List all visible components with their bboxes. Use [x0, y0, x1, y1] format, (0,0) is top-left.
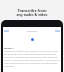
- button[interactable]: Done: [55, 30, 60, 32]
- staticText: Speaker 1: [4, 47, 14, 50]
- button[interactable]: Back: [4, 30, 9, 32]
- staticText: any audio & video: [16, 12, 48, 17]
- button[interactable]: Play: [31, 38, 34, 41]
- staticText: Transcribe from: [17, 8, 47, 13]
- staticText: Welcome everybody to this episode of the…: [4, 50, 60, 68]
